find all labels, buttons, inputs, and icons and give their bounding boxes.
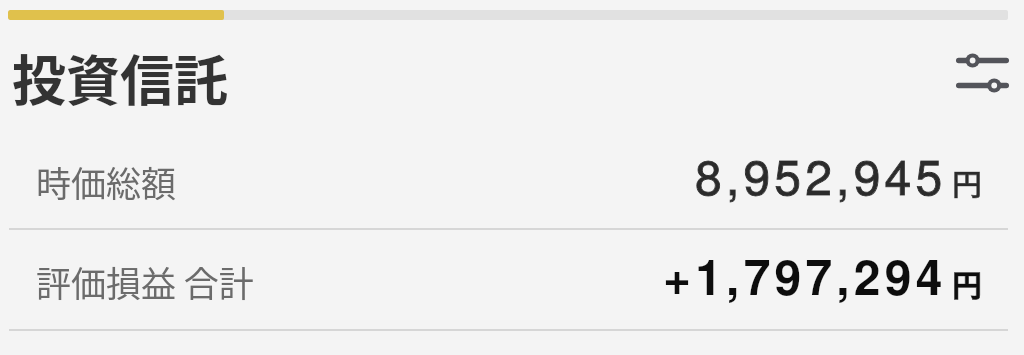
staticText: 8,952,945: [695, 140, 947, 209]
staticText: 円: [952, 261, 982, 304]
staticText: 評価損益 合計: [36, 256, 254, 307]
staticText: 投資信託: [12, 38, 228, 116]
button[interactable]: Filter settings: [936, 35, 1024, 113]
button[interactable]: [0, 231, 1024, 329]
staticText: 8,952,945: [695, 140, 947, 209]
staticText: +1,797,294: [663, 241, 947, 310]
staticText: 円: [952, 160, 982, 203]
staticText: 時価総額: [36, 156, 177, 207]
staticText: 円: [952, 160, 982, 203]
staticText: 円: [952, 261, 982, 304]
button[interactable]: [0, 131, 1024, 229]
